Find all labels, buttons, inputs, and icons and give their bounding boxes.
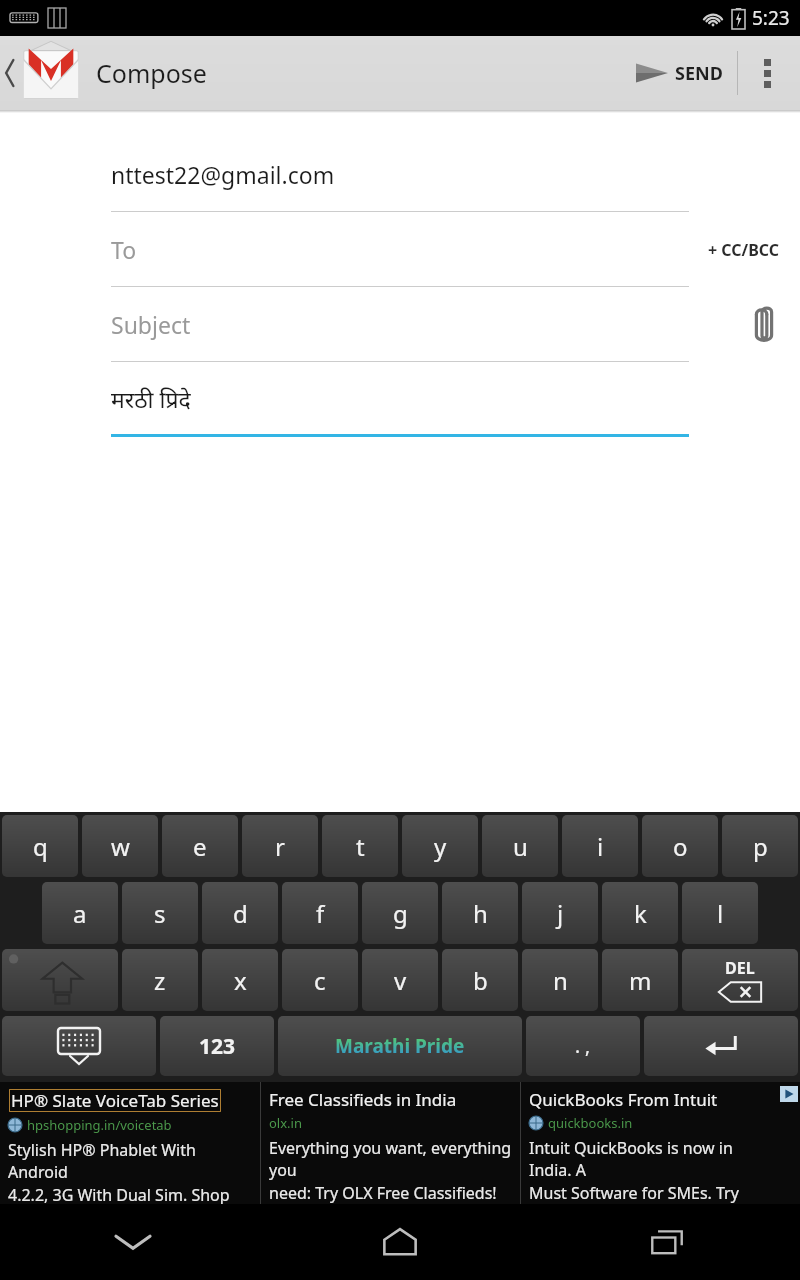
staticText: Must Software for SMEs. Try Free!: [529, 1182, 776, 1204]
staticText: t: [356, 830, 365, 863]
button[interactable]: More options: [738, 36, 796, 110]
staticText: v: [394, 964, 407, 997]
staticText: e: [193, 830, 207, 863]
staticText: need: Try OLX Free Classifieds!: [269, 1182, 497, 1204]
button[interactable]: u: [482, 815, 558, 877]
button[interactable]: Delete: [682, 949, 798, 1011]
button[interactable]: m: [602, 949, 678, 1011]
button[interactable]: मरठी प्रिदे: [111, 362, 689, 437]
button[interactable]: r: [242, 815, 318, 877]
staticText: Intuit QuickBooks is now in India. A: [529, 1137, 776, 1181]
button[interactable]: c: [282, 949, 358, 1011]
staticText: l: [717, 897, 724, 930]
button[interactable]: s: [122, 882, 198, 944]
staticText: QuickBooks From Intuit: [529, 1088, 718, 1111]
button[interactable]: g: [362, 882, 438, 944]
button[interactable]: j: [522, 882, 598, 944]
button[interactable]: Shift: [2, 949, 118, 1011]
button[interactable]: Home: [266, 1204, 533, 1280]
button[interactable]: To: [111, 212, 689, 287]
button[interactable]: y: [402, 815, 478, 877]
staticText: i: [597, 830, 604, 863]
staticText: SEND: [675, 61, 723, 86]
staticText: y: [434, 830, 447, 863]
button[interactable]: e: [162, 815, 238, 877]
button[interactable]: nttest22@gmail.com: [111, 137, 689, 212]
staticText: Everything you want, everything you: [269, 1137, 516, 1181]
staticText: p: [753, 830, 768, 863]
button[interactable]: HP® Slate VoiceTab Series: [0, 1082, 260, 1204]
button[interactable]: Compose: [0, 36, 800, 110]
staticText: To: [111, 234, 137, 265]
staticText: DEL: [725, 957, 755, 979]
button[interactable]: i: [562, 815, 638, 877]
staticText: g: [393, 897, 408, 930]
button[interactable]: SEND: [622, 36, 737, 110]
button[interactable]: x: [202, 949, 278, 1011]
button[interactable]: l: [682, 882, 758, 944]
button[interactable]: k: [602, 882, 678, 944]
staticText: + CC/BCC: [708, 239, 780, 261]
button[interactable]: p: [722, 815, 798, 877]
staticText: Stylish HP® Phablet With Android: [8, 1139, 256, 1183]
button[interactable]: o: [642, 815, 718, 877]
staticText: मरठी प्रिदे: [111, 383, 191, 414]
button[interactable]: Enter: [644, 1016, 798, 1076]
staticText: u: [513, 830, 528, 863]
button[interactable]: d: [202, 882, 278, 944]
staticText: d: [233, 897, 248, 930]
button[interactable]: b: [442, 949, 518, 1011]
staticText: s: [154, 897, 166, 930]
button[interactable]: v: [362, 949, 438, 1011]
button[interactable]: n: [522, 949, 598, 1011]
button[interactable]: f: [282, 882, 358, 944]
staticText: 4.2.2, 3G With Dual Sim. Shop Now!: [8, 1184, 256, 1204]
button[interactable]: + CC/BCC: [702, 231, 786, 269]
staticText: n: [553, 964, 568, 997]
button[interactable]: QuickBooks From Intuit: [521, 1082, 780, 1204]
button[interactable]: a: [42, 882, 118, 944]
button[interactable]: Attach file: [742, 303, 786, 347]
staticText: olx.in: [269, 1114, 302, 1132]
staticText: j: [557, 897, 564, 930]
staticText: a: [73, 897, 87, 930]
staticText: o: [673, 830, 688, 863]
staticText: r: [275, 830, 285, 863]
button[interactable]: Hide keyboard: [2, 1016, 156, 1076]
staticText: q: [33, 830, 48, 863]
button[interactable]: t: [322, 815, 398, 877]
staticText: Marathi Pride: [335, 1033, 465, 1059]
button[interactable]: q: [2, 815, 78, 877]
staticText: hpshopping.in/voicetab: [27, 1116, 172, 1134]
staticText: HP® Slate VoiceTab Series: [11, 1089, 219, 1112]
staticText: Subject: [111, 309, 191, 340]
staticText: Free Classifieds in India: [269, 1088, 457, 1111]
staticText: m: [629, 964, 652, 997]
button[interactable]: 123: [160, 1016, 274, 1076]
staticText: w: [111, 830, 130, 863]
staticText: k: [634, 897, 647, 930]
button[interactable]: Free Classifieds in India: [261, 1082, 520, 1204]
staticText: f: [316, 897, 325, 930]
button[interactable]: h: [442, 882, 518, 944]
staticText: quickbooks.in: [548, 1114, 633, 1132]
staticText: 123: [199, 1032, 236, 1061]
staticText: Compose: [96, 56, 207, 90]
button[interactable]: Subject: [111, 287, 689, 362]
staticText: b: [473, 964, 488, 997]
staticText: nttest22@gmail.com: [111, 159, 335, 190]
button[interactable]: Hide keyboard: [0, 1204, 266, 1280]
button[interactable]: Recent apps: [533, 1204, 800, 1280]
staticText: c: [314, 964, 326, 997]
staticText: z: [154, 964, 166, 997]
staticText: x: [234, 964, 247, 997]
button[interactable]: . ,: [526, 1016, 640, 1076]
button[interactable]: Space: [278, 1016, 522, 1076]
staticText: 5:23: [752, 5, 790, 31]
button[interactable]: z: [122, 949, 198, 1011]
staticText: h: [473, 897, 488, 930]
button[interactable]: w: [82, 815, 158, 877]
staticText: . ,: [575, 1033, 591, 1059]
